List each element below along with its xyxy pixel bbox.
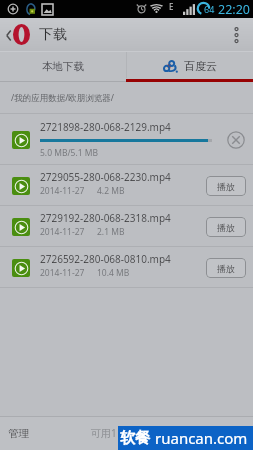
button[interactable]: 播放 — [206, 176, 246, 196]
staticText: ruancan.com — [155, 428, 248, 448]
button[interactable]: More options — [223, 18, 253, 52]
staticText: 可用1 — [91, 426, 117, 440]
staticText: 软餐 — [120, 429, 150, 448]
button[interactable]: 管理 — [6, 420, 31, 447]
staticText: 2726592-280-068-0810.mp4 — [40, 252, 171, 266]
staticText: 2014-11-27 — [40, 185, 85, 197]
staticText: 5.0 MB/5.1 MB — [40, 147, 99, 159]
button[interactable]: 2726592-280-068-0810.mp4 — [0, 247, 253, 288]
staticText: 22:20 — [218, 1, 250, 18]
staticText: 64 — [204, 3, 215, 15]
staticText: 2014-11-27 — [40, 226, 85, 238]
button[interactable]: 2729055-280-068-2230.mp4 — [0, 165, 253, 206]
button[interactable]: 本地下载 — [0, 52, 126, 82]
button[interactable]: 百度云 — [126, 52, 253, 82]
button[interactable]: Cancel download — [225, 129, 246, 150]
staticText: /我的应用数据/欧朋浏览器/ — [11, 92, 114, 104]
staticText: 播放 — [217, 181, 235, 192]
staticText: 本地下载 — [42, 60, 84, 73]
staticText: 播放 — [217, 263, 235, 274]
button[interactable]: 2721898-280-068-2129.mp4 — [0, 114, 253, 165]
staticText: 2014-11-27 — [40, 267, 85, 279]
staticText: 10.4 MB — [97, 267, 130, 279]
staticText: E — [169, 1, 174, 12]
staticText: 管理 — [8, 427, 29, 440]
button[interactable]: 2729192-280-068-2318.mp4 — [0, 206, 253, 247]
staticText: 2729055-280-068-2230.mp4 — [40, 170, 171, 184]
button[interactable]: 播放 — [206, 217, 246, 237]
staticText: 2721898-280-068-2129.mp4 — [40, 120, 171, 134]
button[interactable]: 下载 — [0, 18, 75, 52]
staticText: 下载 — [39, 26, 67, 44]
staticText: 4.2 MB — [97, 185, 125, 197]
staticText: 2.1 MB — [97, 226, 125, 238]
staticText: 百度云 — [184, 59, 217, 73]
button[interactable]: 播放 — [206, 258, 246, 278]
staticText: 播放 — [217, 222, 235, 233]
staticText: 2729192-280-068-2318.mp4 — [40, 211, 171, 225]
